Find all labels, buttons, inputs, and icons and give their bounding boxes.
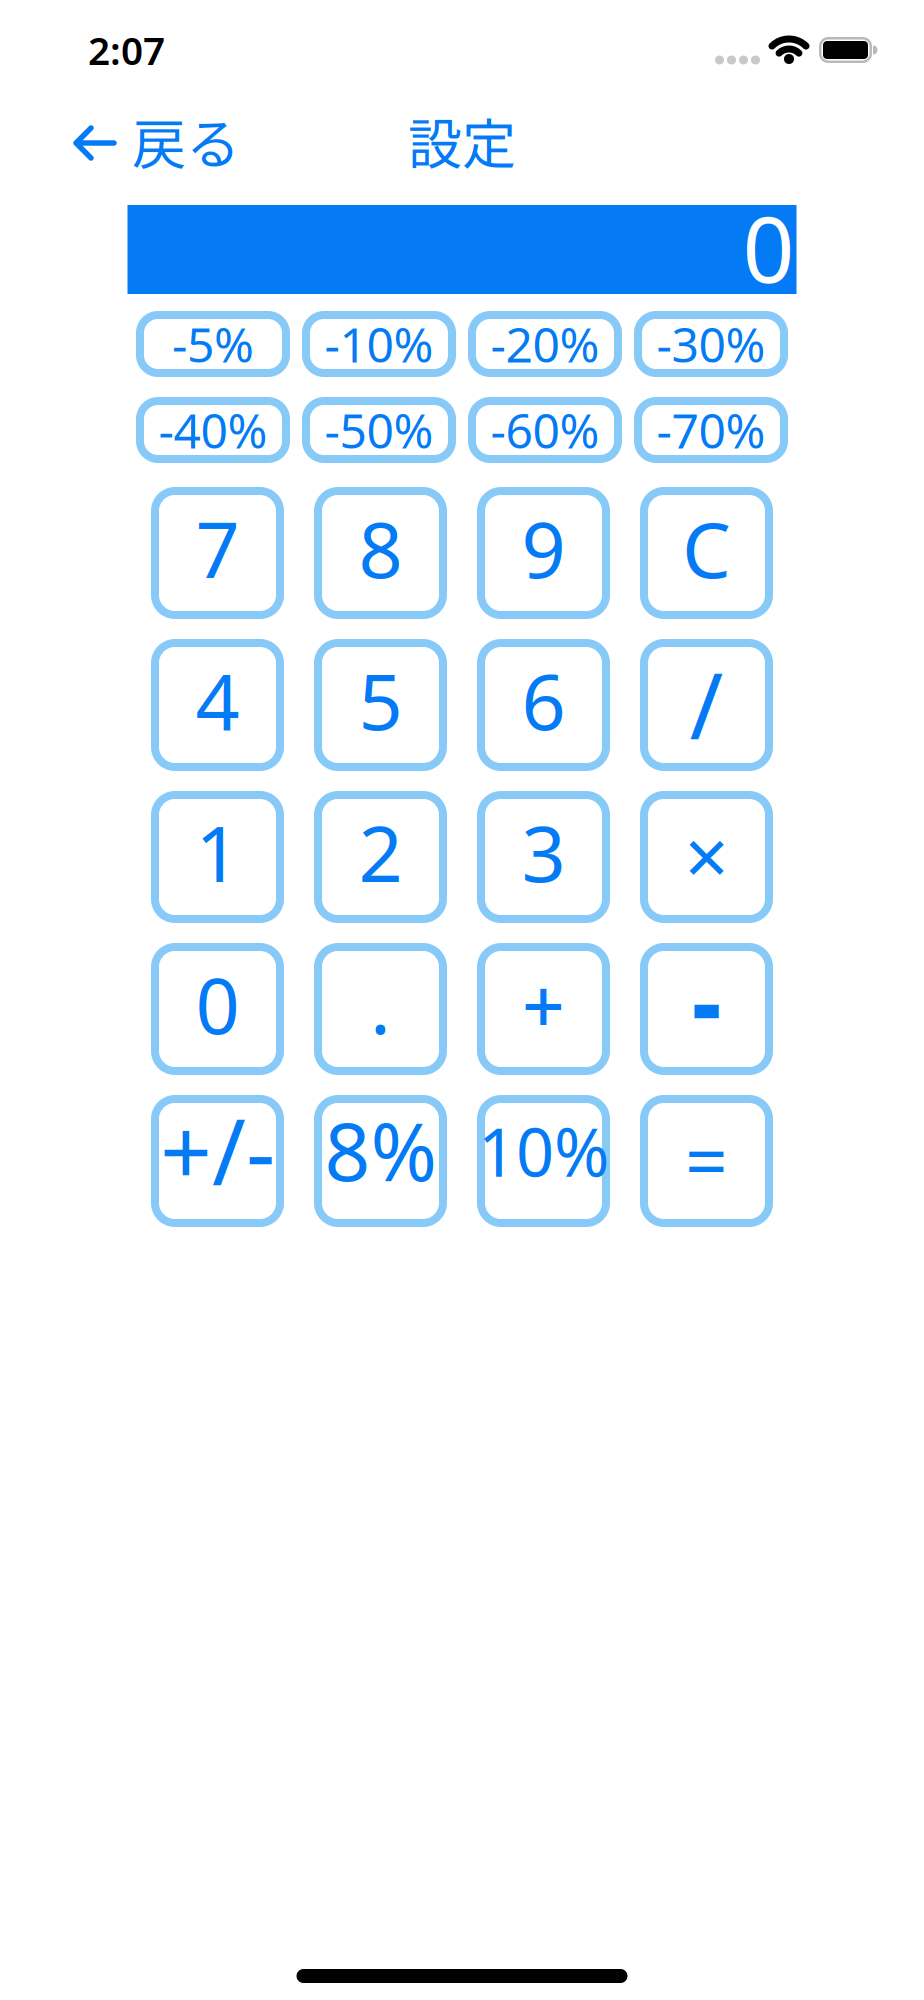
- staticText: 8%: [324, 1097, 436, 1203]
- button[interactable]: +: [477, 943, 610, 1075]
- staticText: -30%: [656, 312, 765, 376]
- button[interactable]: C: [640, 487, 773, 619]
- button[interactable]: 2: [314, 791, 447, 923]
- button[interactable]: 10%: [477, 1095, 610, 1227]
- button[interactable]: ×: [640, 791, 773, 923]
- staticText: 4: [195, 649, 239, 751]
- staticText: -60%: [490, 398, 599, 462]
- button[interactable]: 7: [151, 487, 284, 619]
- button[interactable]: 4: [151, 639, 284, 771]
- staticText: =: [685, 1109, 728, 1209]
- staticText: -20%: [490, 312, 599, 376]
- staticText: 5: [358, 649, 402, 751]
- staticText: +/-: [160, 1090, 275, 1210]
- button[interactable]: 8: [314, 487, 447, 619]
- staticText: 戻る: [132, 102, 240, 180]
- button[interactable]: -70%: [634, 397, 788, 463]
- staticText: 2:07: [88, 24, 165, 76]
- staticText: ×: [684, 804, 728, 906]
- button[interactable]: -5%: [136, 311, 290, 377]
- staticText: -10%: [324, 312, 433, 376]
- staticText: 10%: [478, 1107, 609, 1195]
- staticText: 3: [521, 801, 565, 903]
- button[interactable]: 戻る: [73, 104, 240, 182]
- button[interactable]: 0: [151, 943, 284, 1075]
- button[interactable]: 9: [477, 487, 610, 619]
- staticText: 0: [195, 953, 239, 1055]
- staticText: 設定: [408, 102, 516, 180]
- button[interactable]: +/-: [151, 1095, 284, 1227]
- staticText: -: [692, 943, 720, 1059]
- button[interactable]: 1: [151, 791, 284, 923]
- staticText: -5%: [172, 312, 254, 376]
- button[interactable]: 6: [477, 639, 610, 771]
- staticText: .: [370, 953, 391, 1055]
- button[interactable]: =: [640, 1095, 773, 1227]
- staticText: /: [689, 644, 723, 764]
- button[interactable]: -60%: [468, 397, 622, 463]
- button[interactable]: 3: [477, 791, 610, 923]
- button[interactable]: -10%: [302, 311, 456, 377]
- staticText: 2: [358, 801, 402, 903]
- button[interactable]: /: [640, 639, 773, 771]
- staticText: -50%: [324, 398, 433, 462]
- staticText: +: [522, 954, 565, 1054]
- button[interactable]: 8%: [314, 1095, 447, 1227]
- staticText: 0: [742, 187, 794, 308]
- button[interactable]: .: [314, 943, 447, 1075]
- staticText: 1: [195, 801, 239, 903]
- staticText: C: [682, 497, 731, 599]
- button[interactable]: -30%: [634, 311, 788, 377]
- staticText: -40%: [158, 398, 267, 462]
- staticText: 6: [521, 649, 565, 751]
- staticText: 8: [358, 497, 402, 599]
- button[interactable]: 5: [314, 639, 447, 771]
- button[interactable]: -50%: [302, 397, 456, 463]
- button[interactable]: 設定: [408, 104, 516, 182]
- button[interactable]: -20%: [468, 311, 622, 377]
- staticText: -70%: [656, 398, 765, 462]
- button[interactable]: -40%: [136, 397, 290, 463]
- staticText: 9: [521, 497, 565, 599]
- staticText: 7: [195, 497, 239, 599]
- button[interactable]: -: [640, 943, 773, 1075]
